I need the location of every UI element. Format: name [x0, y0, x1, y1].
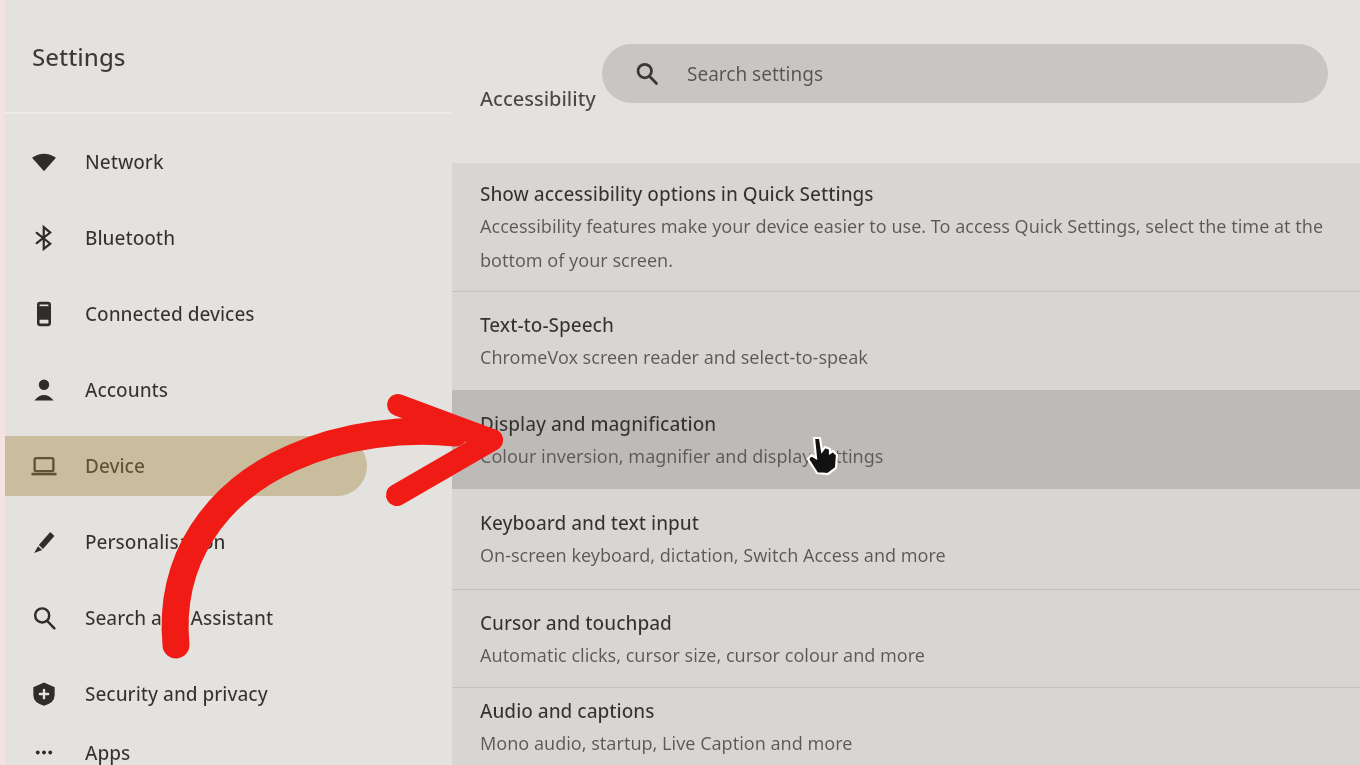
staticText: bottom of your screen.	[480, 248, 674, 273]
staticText: Apps	[85, 740, 131, 765]
staticText: Connected devices	[85, 301, 255, 327]
button[interactable]: Search and Assistant	[0, 588, 367, 648]
staticText: Display and magnification	[480, 411, 717, 437]
staticText: Audio and captions	[480, 698, 655, 724]
button[interactable]: Security and privacy	[0, 664, 367, 724]
button[interactable]: Cursor and touchpad	[452, 590, 1360, 687]
staticText: Show accessibility options in Quick Sett…	[480, 181, 874, 207]
button[interactable]: Connected devices	[0, 284, 367, 344]
button[interactable]: Display and magnification	[452, 390, 1360, 489]
staticText: Search settings	[687, 61, 824, 87]
staticText: Accessibility features make your device …	[480, 214, 1324, 239]
staticText: Colour inversion, magnifier and display …	[480, 444, 884, 469]
button[interactable]: Bluetooth	[0, 208, 367, 268]
button[interactable]: Text-to-Speech	[452, 292, 1360, 390]
button[interactable]: Accounts	[0, 360, 367, 420]
staticText: Text-to-Speech	[480, 312, 614, 338]
staticText: Bluetooth	[85, 225, 176, 251]
button[interactable]: Show accessibility options in Quick Sett…	[452, 163, 1360, 291]
staticText: Personalisation	[85, 529, 226, 555]
staticText: Mono audio, startup, Live Caption and mo…	[480, 731, 853, 756]
button[interactable]: Personalisation	[0, 512, 367, 572]
staticText: ChromeVox screen reader and select-to-sp…	[480, 345, 868, 370]
button[interactable]: Keyboard and text input	[452, 489, 1360, 589]
button[interactable]: Apps	[0, 740, 367, 765]
staticText: Security and privacy	[85, 681, 268, 707]
staticText: Network	[85, 149, 164, 175]
button[interactable]: Search settings	[602, 44, 1328, 103]
staticText: Accessibility	[480, 85, 596, 112]
button[interactable]: Device	[0, 436, 367, 496]
staticText: Search and Assistant	[85, 605, 274, 631]
staticText: Accounts	[85, 377, 169, 403]
staticText: Keyboard and text input	[480, 510, 700, 536]
staticText: Cursor and touchpad	[480, 610, 672, 636]
button[interactable]: Network	[0, 132, 367, 192]
staticText: Settings	[32, 40, 126, 73]
staticText: On-screen keyboard, dictation, Switch Ac…	[480, 543, 946, 568]
button[interactable]: Audio and captions	[452, 688, 1360, 765]
staticText: Device	[85, 453, 145, 479]
staticText: Automatic clicks, cursor size, cursor co…	[480, 643, 925, 668]
